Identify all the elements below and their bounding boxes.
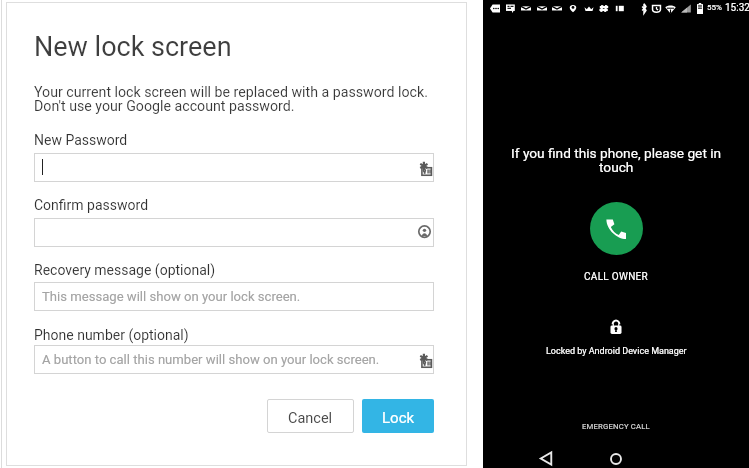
button[interactable]: This message will show on your lock scre… [34,282,434,311]
button[interactable]: Cancel [267,399,354,433]
staticText: Your current lock screen will be replace… [34,84,428,101]
button[interactable]: EMERGENCY CALL [582,422,650,431]
staticText: 15:32 [725,2,749,14]
staticText: If you find this phone, please get in [511,145,722,161]
staticText: Lock [382,409,415,427]
staticText: Locked by Android Device Manager [546,346,687,357]
staticText: New Password [34,132,128,148]
staticText: Phone number (optional) [34,327,189,343]
staticText: Confirm password [34,197,149,213]
staticText: 55% [707,3,722,12]
staticText: EMERGENCY CALL [582,422,650,431]
staticText: touch [599,159,634,175]
button[interactable]: Call owner [590,202,643,255]
staticText: This message will show on your lock scre… [42,289,301,304]
staticText: New lock screen [34,31,232,63]
button[interactable]: Lock [362,399,434,433]
staticText: Recovery message (optional) [34,262,216,278]
staticText: CALL OWNER [584,271,649,283]
button[interactable] [34,218,434,247]
button[interactable]: Back [530,444,562,468]
staticText: Don't use your Google account password. [34,98,295,115]
button[interactable] [34,153,434,182]
staticText: Cancel [288,410,333,427]
button[interactable]: Home [600,445,632,468]
staticText: A button to call this number will show o… [42,352,380,367]
button[interactable]: A button to call this number will show o… [34,345,434,374]
